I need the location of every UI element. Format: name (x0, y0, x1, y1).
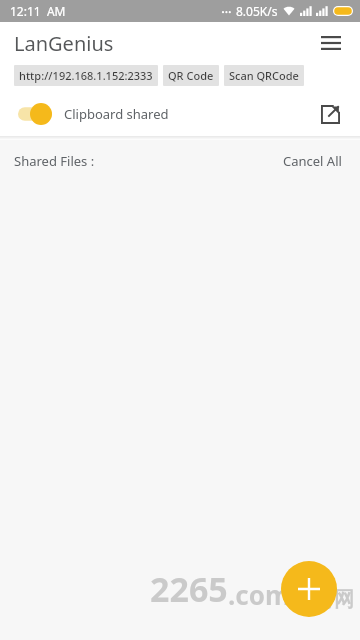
staticText: Scan QRCode (229, 68, 299, 83)
button[interactable]: QR Code (163, 65, 219, 86)
staticText: Clipboard shared (64, 105, 169, 123)
button[interactable]: Open in browser (310, 95, 350, 133)
staticText: 2265 (150, 566, 228, 612)
staticText: LanGenius (14, 30, 114, 57)
staticText: http://192.168.1.152:2333 (19, 68, 153, 83)
button[interactable]: http://192.168.1.152:2333 (14, 65, 158, 86)
button[interactable]: Clipboard shared (0, 103, 310, 125)
staticText: .com (228, 577, 291, 612)
button[interactable]: Add file (281, 561, 337, 617)
button[interactable]: Menu (310, 22, 352, 64)
button[interactable]: Cancel All (279, 148, 346, 174)
staticText: QR Code (168, 68, 214, 83)
staticText: 手游网 (294, 587, 354, 612)
button[interactable]: Scan QRCode (224, 65, 304, 86)
staticText: Cancel All (283, 152, 342, 170)
staticText: 12:11 AM (10, 3, 66, 19)
staticText: Shared Files : (14, 152, 95, 170)
staticText: 8.05K/s (236, 3, 278, 19)
